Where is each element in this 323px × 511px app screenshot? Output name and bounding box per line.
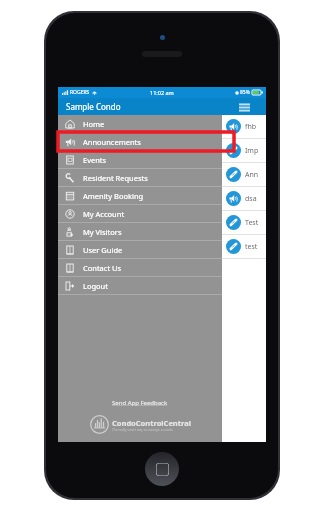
staticText: fhb	[245, 122, 257, 132]
button[interactable]: Home button	[145, 452, 179, 486]
staticText: The really smart way to manage a condo.	[112, 428, 174, 432]
staticText: ROGERS	[70, 89, 90, 96]
staticText: test	[245, 242, 258, 252]
button[interactable]: Home	[58, 115, 222, 132]
button[interactable]: test	[222, 235, 266, 258]
button[interactable]: My Visitors	[58, 223, 222, 240]
button[interactable]: Contact Us	[58, 259, 222, 276]
staticText: Ann	[245, 170, 259, 180]
staticText: My Account	[83, 209, 125, 219]
staticText: Home	[83, 119, 105, 129]
staticText: Resident Requests	[83, 173, 148, 183]
staticText: Contact Us	[83, 263, 122, 273]
staticText: Test	[245, 218, 259, 228]
staticText: CondoControlCentral	[112, 418, 191, 428]
staticText: Events	[83, 155, 107, 165]
button[interactable]: Imp	[222, 139, 266, 162]
staticText: Sample Condo	[66, 101, 121, 112]
button[interactable]: Ann	[222, 163, 266, 186]
button[interactable]: Test	[222, 211, 266, 234]
button[interactable]: Events	[58, 151, 222, 168]
staticText: Announcements	[83, 137, 141, 147]
button[interactable]: Amenity Booking	[58, 187, 222, 204]
staticText: 11:02 am	[150, 89, 174, 96]
button[interactable]: My Account	[58, 205, 222, 222]
staticText: dsa	[245, 194, 257, 204]
button[interactable]: Send App Feedback	[112, 399, 168, 407]
button[interactable]: Announcements	[58, 133, 222, 150]
staticText: Imp	[245, 146, 259, 156]
button[interactable]: fhb	[222, 115, 266, 138]
button[interactable]: Logout	[58, 277, 222, 294]
staticText: Amenity Booking	[83, 191, 144, 201]
button[interactable]: User Guide	[58, 241, 222, 258]
staticText: Logout	[83, 281, 108, 291]
staticText: My Visitors	[83, 227, 122, 237]
button[interactable]: dsa	[222, 187, 266, 210]
staticText: 85%	[240, 89, 250, 96]
staticText: User Guide	[83, 245, 123, 255]
button[interactable]: Resident Requests	[58, 169, 222, 186]
